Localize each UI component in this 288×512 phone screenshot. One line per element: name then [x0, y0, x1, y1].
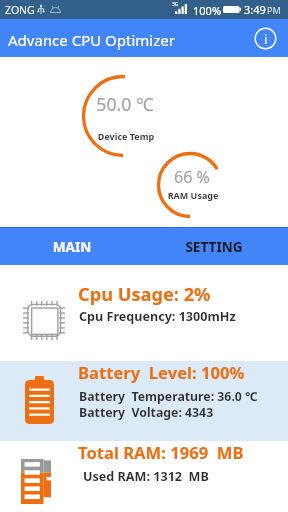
staticText: Cpu Frequency: 1300mHz [79, 308, 236, 325]
button[interactable] [0, 361, 288, 441]
button[interactable]: Info [254, 27, 277, 50]
staticText: RAM Usage [93, 189, 288, 201]
button[interactable] [0, 441, 288, 512]
staticText: SETTING [114, 237, 288, 256]
button[interactable] [0, 265, 288, 361]
staticText: Used RAM: 1312 MB [83, 468, 209, 485]
staticText: Battery Temperature: 36.0 ℃ [79, 388, 258, 405]
staticText: Cpu Usage: 2% [78, 282, 211, 307]
staticText: MAIN [0, 237, 172, 256]
staticText: Advance CPU Optimizer [8, 30, 175, 50]
staticText: i [264, 30, 268, 48]
staticText: Device Temp [26, 130, 226, 142]
staticText: ZONG [5, 3, 35, 17]
button[interactable] [0, 228, 144, 265]
staticText: 100% [193, 3, 222, 18]
button[interactable] [144, 228, 288, 265]
staticText: 3G [172, 1, 179, 8]
staticText: 66 % [92, 166, 288, 188]
staticText: Battery Level: 100% [78, 361, 245, 384]
staticText: PM [267, 4, 281, 16]
staticText: 50.0 ℃ [25, 92, 225, 116]
staticText: 3:49 [244, 2, 266, 17]
staticText: Battery Voltage: 4343 [79, 404, 214, 421]
staticText: Total RAM: 1969 MB [78, 441, 244, 464]
